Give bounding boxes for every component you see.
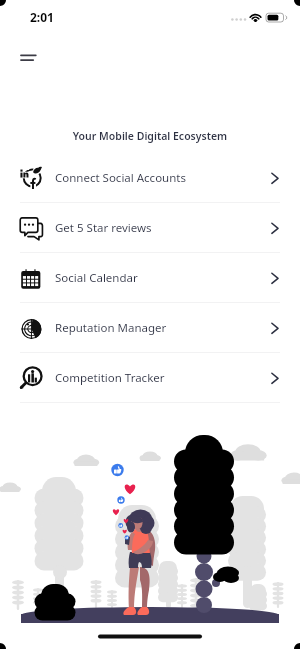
button[interactable]: Get 5 Star reviews: [0, 203, 300, 252]
staticText: 2:01: [30, 9, 54, 25]
staticText: Connect Social Accounts: [55, 170, 186, 186]
staticText: Get 5 Star reviews: [55, 220, 152, 236]
staticText: Competition Tracker: [55, 370, 165, 386]
staticText: Reputation Manager: [55, 320, 167, 336]
button[interactable]: Menu: [7, 41, 43, 72]
button[interactable]: Social Calendar: [0, 253, 300, 302]
button[interactable]: Competition Tracker: [0, 353, 300, 402]
button[interactable]: Reputation Manager: [0, 303, 300, 352]
button[interactable]: Connect Social Accounts: [0, 153, 300, 202]
staticText: Your Mobile Digital Ecosystem: [0, 129, 300, 143]
staticText: Social Calendar: [55, 270, 138, 286]
